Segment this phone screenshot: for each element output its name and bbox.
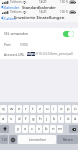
button[interactable]: w	[8, 105, 15, 113]
button[interactable]: j	[44, 115, 50, 123]
staticText: v	[38, 126, 41, 132]
staticText: x	[24, 126, 27, 132]
staticText: c	[31, 126, 34, 132]
button[interactable]: g	[30, 115, 36, 123]
button[interactable]: n	[50, 125, 56, 133]
button[interactable]: r	[23, 105, 29, 113]
staticText: SSL verwenden	[4, 31, 29, 36]
staticText: 14:21	[39, 10, 47, 14]
staticText: Telekom	[10, 10, 22, 14]
staticText: https	[27, 52, 35, 56]
staticText: s	[10, 116, 13, 122]
button[interactable]: o	[58, 105, 64, 113]
button[interactable]: Emoji	[9, 135, 17, 144]
button[interactable]: Return	[57, 135, 78, 144]
button[interactable]: Calden	[0, 14, 18, 22]
staticText: o	[60, 106, 63, 112]
button[interactable]: u	[44, 105, 50, 113]
staticText: y	[17, 126, 20, 132]
button[interactable]: k	[51, 115, 57, 123]
button[interactable]: f	[23, 115, 29, 123]
staticText: 100 %	[60, 0, 69, 4]
button[interactable]: l	[58, 115, 64, 123]
button[interactable]: ö	[65, 115, 71, 123]
staticText: 100 %	[60, 10, 69, 14]
staticText: q	[2, 106, 5, 112]
staticText: j	[46, 116, 48, 122]
button[interactable]: q	[0, 105, 7, 113]
staticText: e	[18, 106, 21, 112]
button[interactable]: s	[8, 115, 15, 123]
staticText: b	[45, 126, 48, 132]
staticText: r	[25, 106, 27, 112]
staticText: f	[25, 116, 27, 122]
staticText: Kalender	[4, 5, 20, 10]
staticText: p	[67, 106, 70, 112]
button[interactable]: Leerzeichen	[18, 135, 56, 144]
staticText: ä	[74, 116, 77, 122]
staticText: m	[58, 126, 62, 132]
button[interactable]: d	[16, 115, 22, 123]
staticText: Standardkalender	[22, 5, 57, 10]
button[interactable]: p	[65, 105, 71, 113]
staticText: z	[39, 106, 41, 112]
staticText: h	[39, 116, 42, 122]
button[interactable]: m	[57, 125, 63, 133]
button[interactable]: h	[37, 115, 43, 123]
staticText: Account-URL	[4, 52, 25, 57]
staticText: Erweiterte Einstellungen	[14, 15, 65, 21]
staticText: w	[10, 106, 14, 112]
staticText: k	[53, 116, 56, 122]
button[interactable]: ä	[72, 115, 78, 123]
button[interactable]: 123	[0, 135, 8, 144]
button[interactable]: Löschen	[69, 125, 78, 133]
button[interactable]: t	[30, 105, 36, 113]
staticText: i	[53, 106, 55, 112]
staticText: ö	[67, 116, 70, 122]
staticText: 5900	[20, 42, 28, 47]
staticText: g	[32, 116, 35, 122]
button[interactable]: ü	[72, 105, 78, 113]
staticText: Leerzeichen	[29, 138, 46, 142]
staticText: n	[52, 126, 55, 132]
button[interactable]: Port	[0, 39, 78, 49]
staticText: Port	[4, 42, 11, 47]
staticText: u	[46, 106, 49, 112]
button[interactable]: v	[36, 125, 42, 133]
staticText: a	[2, 116, 5, 122]
button[interactable]: e	[16, 105, 22, 113]
button[interactable]: i	[51, 105, 57, 113]
button[interactable]: y	[15, 125, 21, 133]
staticText: ü	[74, 106, 77, 112]
staticText: d	[18, 116, 21, 122]
staticText: l	[60, 116, 62, 122]
button[interactable]: Umschalt	[0, 125, 9, 133]
button[interactable]: c	[29, 125, 35, 133]
button[interactable]: x	[22, 125, 28, 133]
staticText: Return	[63, 138, 73, 142]
button[interactable]: z	[37, 105, 43, 113]
button[interactable]: SSL verwenden	[0, 28, 78, 39]
button[interactable]: Kalender	[0, 4, 22, 10]
staticText: t	[32, 106, 34, 112]
button[interactable]: a	[0, 115, 7, 123]
staticText: 14:21	[39, 0, 47, 4]
staticText: Telekom	[10, 0, 22, 4]
button[interactable]: b	[43, 125, 49, 133]
button[interactable]: Account-URL	[0, 49, 78, 59]
staticText: Calden	[4, 16, 16, 21]
staticText: 123	[2, 138, 7, 142]
staticText: ://10.0.0.5/bms_principal/	[35, 52, 74, 56]
